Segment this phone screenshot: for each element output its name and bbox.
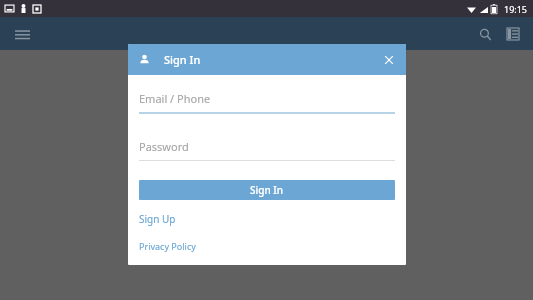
button[interactable]: Search [471, 20, 499, 48]
button[interactable]: Sign In [139, 180, 395, 200]
button[interactable]: Open navigation menu [8, 20, 36, 48]
button[interactable]: Close [377, 48, 401, 72]
staticText: Password [139, 139, 189, 154]
button[interactable]: Password [139, 139, 395, 161]
button[interactable]: Email / Phone [139, 91, 395, 114]
button[interactable]: Change view [499, 20, 527, 48]
staticText: Sign In [250, 183, 284, 197]
staticText: Sign Up [139, 212, 176, 226]
staticText: Sign In [164, 52, 201, 67]
button[interactable]: Sign Up [139, 212, 176, 226]
button[interactable]: Privacy Policy [139, 240, 196, 252]
staticText: 19:15 [504, 3, 528, 15]
staticText: Email / Phone [139, 91, 211, 106]
staticText: You do not have any items. Working in of… [145, 109, 388, 123]
staticText: Privacy Policy [139, 240, 196, 252]
